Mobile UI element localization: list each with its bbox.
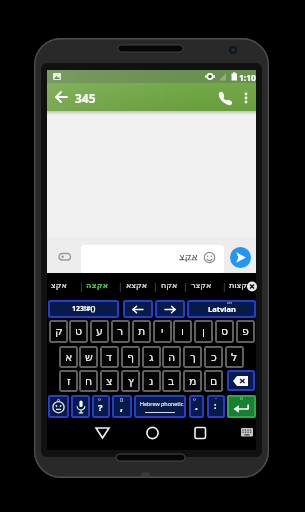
button[interactable]: אקצה (86, 279, 113, 294)
button[interactable]: מ (183, 370, 202, 392)
staticText: ר (117, 325, 124, 338)
button[interactable]: 0 (112, 395, 132, 418)
staticText: ם (210, 375, 218, 388)
button[interactable]: ג (142, 346, 161, 368)
staticText: אקח (161, 281, 178, 290)
button[interactable]: ה (162, 346, 181, 368)
staticText: | (153, 281, 158, 292)
button[interactable]: פ (236, 320, 255, 343)
staticText: | (222, 281, 227, 292)
button[interactable]: ם (204, 370, 223, 392)
button[interactable] (241, 90, 251, 106)
staticText: ק (55, 325, 63, 338)
staticText: ש (85, 351, 93, 364)
button[interactable]: אקח (161, 279, 179, 294)
button[interactable]: י (153, 320, 172, 343)
staticText: ג (149, 351, 154, 364)
button[interactable]: אקצא (126, 279, 150, 294)
staticText: : (214, 399, 217, 411)
staticText: ס (221, 325, 229, 338)
button[interactable]: ח (79, 370, 98, 392)
staticText: אקצה (86, 281, 109, 290)
button[interactable]: ז (59, 370, 78, 392)
button[interactable] (48, 395, 69, 418)
staticText: ף (127, 351, 135, 364)
button[interactable]: ‹› (227, 395, 256, 418)
button[interactable]: ¨ (207, 395, 225, 418)
staticText: ה (168, 351, 176, 364)
button[interactable]: ך (183, 346, 202, 368)
staticText: 123!#() (72, 304, 96, 314)
button[interactable] (52, 88, 72, 106)
button[interactable]: ל (225, 346, 244, 368)
staticText: | (118, 281, 123, 292)
button[interactable]: אקצות (229, 279, 255, 294)
button[interactable] (123, 300, 153, 318)
button[interactable] (155, 300, 185, 318)
staticText: א (65, 351, 73, 364)
button[interactable]: ב (162, 370, 181, 392)
staticText: ‹› (98, 396, 101, 402)
staticText: ל (231, 351, 238, 364)
staticText: אקצ (179, 251, 198, 262)
staticText: מ (189, 375, 197, 388)
button[interactable]: ע (90, 320, 109, 343)
button[interactable] (81, 245, 224, 273)
button[interactable]: ן (194, 320, 213, 343)
staticText: ‹› (240, 395, 243, 401)
button[interactable]: Hebrew phonetic (134, 395, 186, 418)
staticText: אקצ (51, 281, 67, 290)
staticText: ך (190, 351, 196, 364)
staticText: י (161, 325, 164, 338)
staticText: , (120, 400, 123, 414)
button[interactable]: ד (100, 346, 119, 368)
staticText: 345 (75, 90, 96, 106)
button[interactable]: 123!#() (48, 300, 119, 318)
staticText: אקצות (229, 281, 253, 290)
button[interactable]: ת (132, 320, 151, 343)
button[interactable] (191, 424, 208, 441)
staticText: ? (98, 401, 103, 414)
button[interactable] (230, 247, 251, 268)
staticText: ע (96, 325, 103, 338)
button[interactable]: ש (79, 346, 98, 368)
button[interactable]: ו (173, 320, 192, 343)
staticText: נ (149, 375, 154, 388)
button[interactable]: צ (100, 370, 119, 392)
staticText: Hebrew phonetic (140, 400, 184, 407)
staticText: ת (138, 325, 146, 338)
button[interactable]: א (59, 346, 78, 368)
button[interactable] (217, 90, 233, 106)
button[interactable]: ץ (121, 370, 140, 392)
button[interactable]: נ (142, 370, 161, 392)
staticText: 1:10 (239, 72, 256, 84)
staticText: ו (181, 325, 184, 338)
button[interactable]: ט (69, 320, 88, 343)
button[interactable] (93, 424, 112, 441)
button[interactable]: ק (49, 320, 68, 343)
staticText: ן (202, 325, 205, 338)
button[interactable]: ‹› (92, 395, 110, 418)
button[interactable]: אקצר (191, 279, 215, 294)
button[interactable] (71, 395, 90, 418)
button[interactable] (227, 370, 255, 391)
staticText: אקצא (126, 281, 148, 290)
button[interactable]: ר (111, 320, 130, 343)
button[interactable]: כ (204, 346, 223, 368)
button[interactable]: ף (121, 346, 140, 368)
button[interactable]: ס (215, 320, 234, 343)
button[interactable]: ‹› (189, 395, 204, 418)
staticText: ‹› (193, 396, 196, 402)
button[interactable]: אקצ (51, 279, 73, 294)
staticText: ב (168, 375, 175, 388)
button[interactable]: Latvian (187, 300, 256, 318)
staticText: צ (106, 375, 113, 388)
staticText: 0 (120, 396, 124, 403)
button[interactable] (240, 426, 254, 438)
staticText: ח (85, 375, 93, 388)
staticText: פ (242, 325, 249, 338)
staticText: אקצר (191, 281, 212, 290)
staticText: . (195, 399, 198, 413)
button[interactable] (144, 424, 161, 441)
button[interactable] (203, 251, 216, 264)
